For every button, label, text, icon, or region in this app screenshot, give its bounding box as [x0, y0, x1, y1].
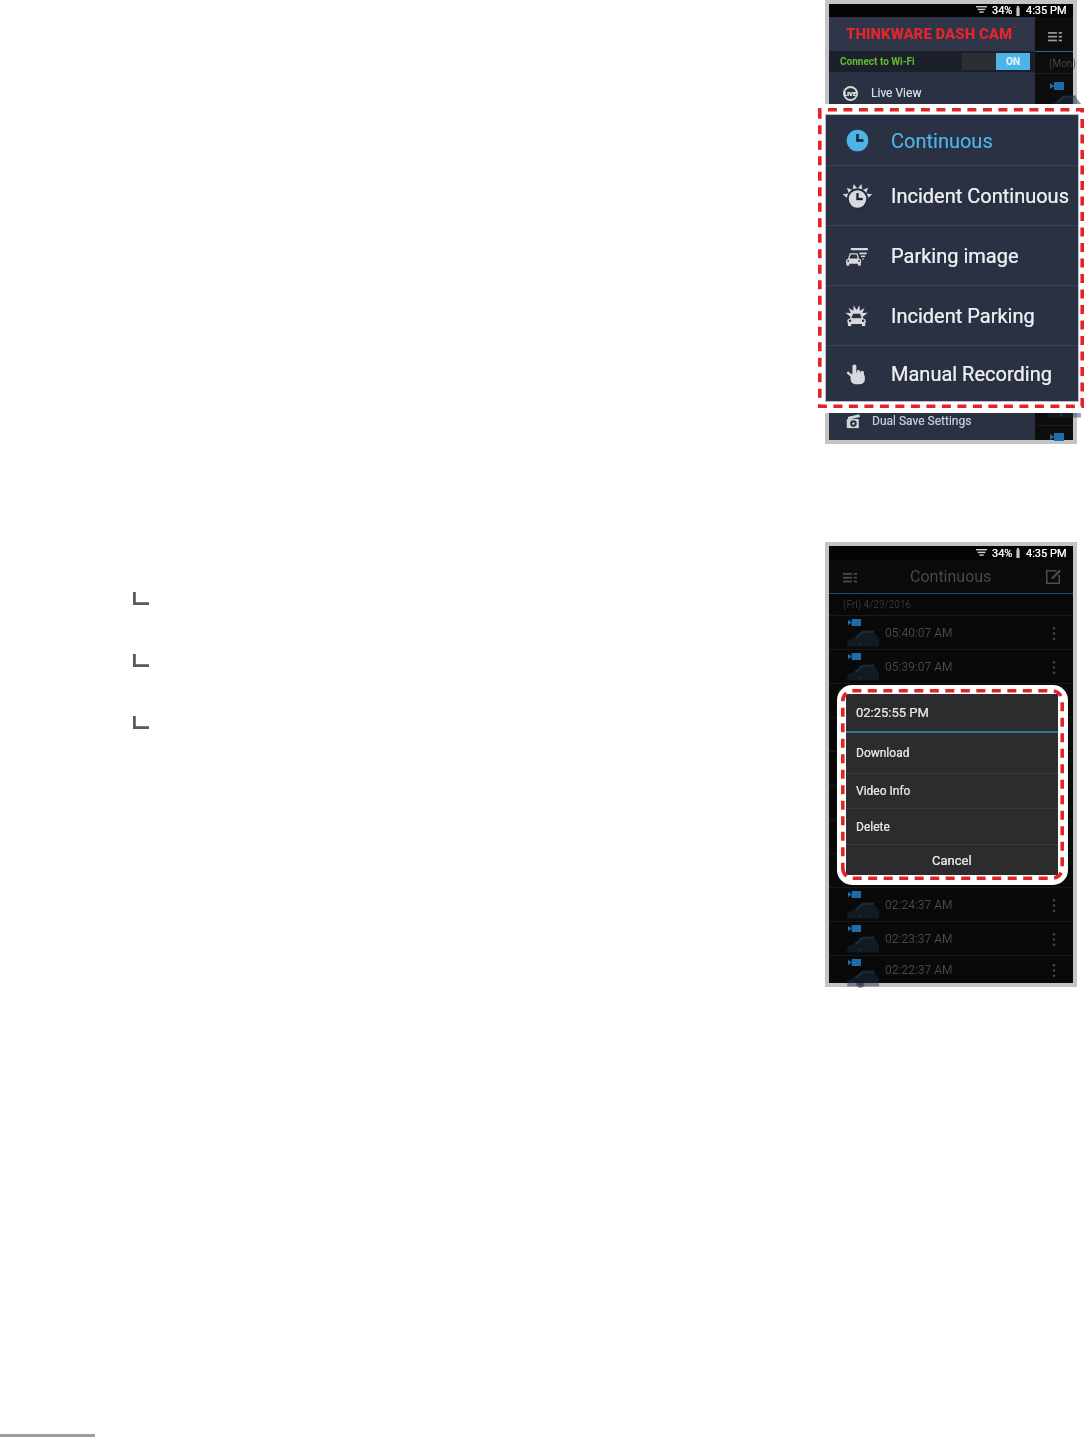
button[interactable]: More options	[1044, 759, 1064, 779]
button[interactable]: Incident Continuous	[826, 166, 1078, 225]
button[interactable]: Dual Save Settings	[845, 402, 1035, 440]
button[interactable]: Delete	[846, 809, 1058, 844]
button[interactable]: Download	[846, 733, 1058, 773]
button[interactable]: Continuous	[826, 115, 1078, 165]
staticText: Incident Parking	[891, 304, 1035, 327]
button[interactable]: Video Info	[846, 774, 1058, 808]
staticText: Delete	[856, 820, 890, 834]
staticText: Live View	[871, 86, 922, 100]
staticText: Parking image	[891, 244, 1019, 267]
staticText: 4:35 PM	[1026, 4, 1067, 17]
button[interactable]: Manual Recording	[826, 346, 1078, 401]
button[interactable]: 02:25:37 AM	[829, 854, 1073, 887]
button[interactable]: More options	[1044, 895, 1064, 915]
button[interactable]: More options	[1044, 657, 1064, 677]
staticText: 02:24:37 AM	[885, 898, 953, 912]
button[interactable]: 02:23:37 AM	[829, 922, 1073, 955]
button[interactable]: 02:24:37 AM	[829, 888, 1073, 921]
staticText: Download	[856, 746, 910, 760]
button[interactable]: 02:30:37 AM	[829, 684, 1073, 717]
button[interactable]: 02:26:37 AM	[829, 820, 1073, 853]
staticText: Connect to Wi-Fi	[840, 56, 915, 68]
staticText: 4:35 PM	[1026, 547, 1067, 560]
staticText: ™	[1013, 25, 1018, 33]
button[interactable]: LIVE	[843, 72, 1035, 114]
button[interactable]: More options	[1044, 929, 1064, 949]
staticText: ON	[1006, 56, 1020, 68]
staticText: 02:25:55 PM	[856, 705, 929, 720]
button[interactable]: More options	[1044, 691, 1064, 711]
button[interactable]: 05:40:07 AM	[829, 616, 1073, 649]
staticText: Cancel	[932, 853, 972, 868]
staticText: 02:29:37 AM	[885, 728, 953, 742]
staticText: (Mon)	[1049, 58, 1076, 70]
button[interactable]: Incident Parking	[826, 286, 1078, 345]
staticText: Continuous	[910, 567, 992, 586]
button[interactable]: Cancel	[846, 845, 1058, 875]
button[interactable]: Parking image	[826, 226, 1078, 285]
button[interactable]: More options	[1044, 725, 1064, 745]
staticText: Incident Continuous	[891, 184, 1069, 207]
staticText: THINKWARE DASH CAM	[846, 25, 1013, 43]
button[interactable]: Connect to Wi-Fi	[840, 51, 1030, 72]
staticText: 02:28:37 AM	[885, 762, 953, 776]
button[interactable]: More options	[1044, 960, 1064, 980]
button[interactable]: 02:22:37 AM	[829, 956, 1073, 983]
button[interactable]: Menu	[839, 566, 861, 588]
staticText: 34%	[992, 4, 1013, 17]
button[interactable]: More options	[1044, 861, 1064, 881]
button[interactable]: 02:28:37 AM	[829, 752, 1073, 785]
staticText: Video Info	[856, 784, 911, 798]
staticText: Manual Recording	[891, 362, 1052, 385]
staticText: Continuous	[891, 129, 993, 152]
staticText: 02:27:37 AM	[885, 796, 953, 810]
staticText: (Fri) 4/29/2016	[843, 599, 912, 611]
button[interactable]: 05:39:07 AM	[829, 650, 1073, 683]
staticText: 02:22:37 AM	[885, 963, 953, 977]
button[interactable]: 02:29:37 AM	[829, 718, 1073, 751]
staticText: 02:25:37 AM	[885, 864, 953, 878]
staticText: 05:40:07 AM	[885, 626, 953, 640]
button[interactable]: More options	[1044, 827, 1064, 847]
staticText: LIVE	[844, 90, 857, 97]
staticText: 34%	[992, 547, 1013, 560]
staticText: 05:39:07 AM	[885, 660, 953, 674]
button[interactable]: More options	[1044, 623, 1064, 643]
staticText: Dual Save Settings	[872, 414, 972, 428]
button[interactable]: More options	[1044, 793, 1064, 813]
staticText: 02:26:37 AM	[885, 830, 953, 844]
staticText: 02:23:37 AM	[885, 932, 953, 946]
button[interactable]: 02:27:37 AM	[829, 786, 1073, 819]
button[interactable]: Edit	[1043, 567, 1063, 587]
